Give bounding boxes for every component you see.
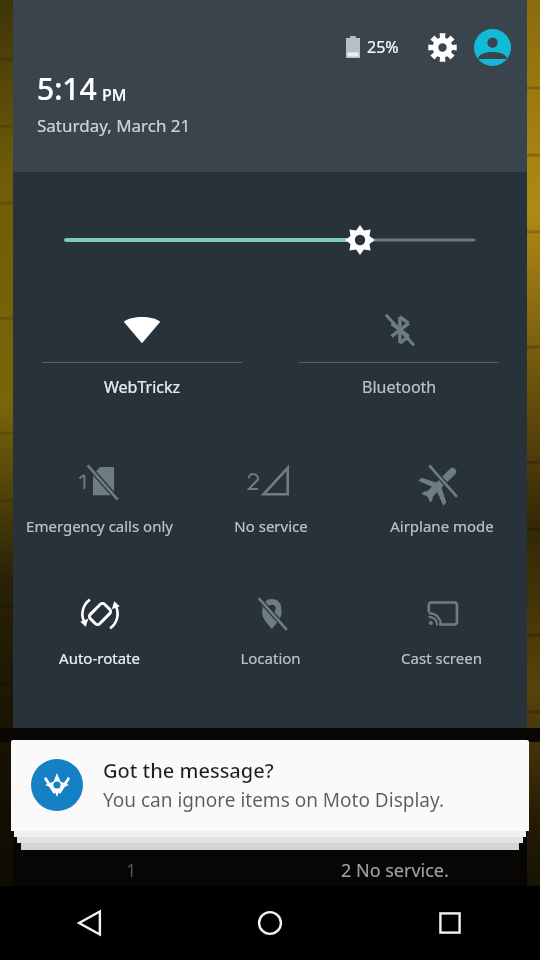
staticText: No service xyxy=(234,516,308,536)
staticText: You can ignore items on Moto Display. xyxy=(103,787,445,813)
staticText: Airplane mode xyxy=(390,516,494,536)
staticText: Bluetooth xyxy=(362,376,437,398)
staticText: 2 No service. xyxy=(341,858,449,883)
staticText: Cast screen xyxy=(401,648,482,668)
button[interactable]: Location xyxy=(185,592,356,688)
staticText: Saturday, March 21 xyxy=(37,114,191,137)
button[interactable]: Settings xyxy=(421,26,463,68)
button[interactable]: Back xyxy=(0,886,180,960)
button[interactable]: Brightness xyxy=(13,212,527,268)
staticText: PM xyxy=(102,84,127,106)
staticText: Emergency calls only xyxy=(26,516,173,536)
button[interactable]: Home xyxy=(180,886,360,960)
button[interactable]: No service xyxy=(185,460,356,556)
staticText: Location xyxy=(240,648,301,668)
button[interactable]: Auto-rotate xyxy=(13,592,185,688)
button[interactable]: Got the message? xyxy=(11,740,529,830)
staticText: Auto-rotate xyxy=(59,648,140,668)
button[interactable]: Recent apps xyxy=(360,886,540,960)
staticText: 5:14 xyxy=(37,68,97,109)
staticText: Got the message? xyxy=(103,757,274,784)
button[interactable]: WebTrickz xyxy=(13,302,270,412)
staticText: 1 xyxy=(126,858,137,883)
button[interactable]: 5:14 xyxy=(37,68,191,137)
button[interactable]: Bluetooth xyxy=(270,302,527,412)
staticText: WebTrickz xyxy=(104,376,181,398)
staticText: 25% xyxy=(367,36,399,58)
button[interactable]: Cast screen xyxy=(356,592,527,688)
button[interactable]: Emergency calls only xyxy=(13,460,185,556)
button[interactable]: User profile xyxy=(471,26,513,68)
button[interactable]: Airplane mode xyxy=(356,460,527,556)
